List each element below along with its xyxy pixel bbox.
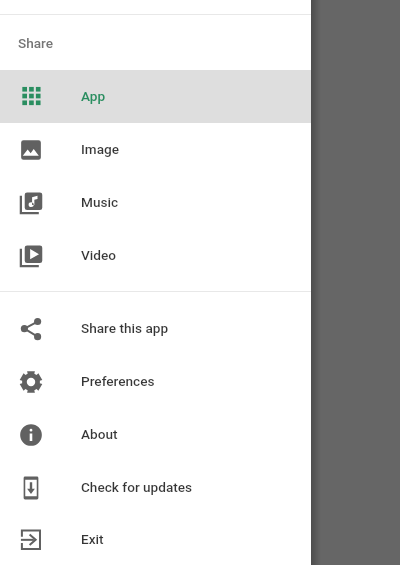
button[interactable]: About: [0, 408, 311, 461]
staticText: Music: [81, 194, 119, 210]
staticText: Video: [81, 247, 116, 263]
staticText: Preferences: [81, 373, 155, 389]
staticText: Exit: [81, 531, 104, 547]
staticText: Image: [81, 141, 120, 157]
staticText: About: [81, 426, 118, 442]
button[interactable]: App: [0, 70, 311, 123]
staticText: Share this app: [81, 320, 169, 336]
button[interactable]: Exit: [0, 514, 311, 565]
button[interactable]: Share this app: [0, 302, 311, 355]
button[interactable]: Video: [0, 229, 311, 282]
button[interactable]: Music: [0, 176, 311, 229]
staticText: Share: [18, 35, 54, 51]
button[interactable]: Check for updates: [0, 461, 311, 514]
staticText: Check for updates: [81, 479, 193, 495]
button[interactable]: Image: [0, 123, 311, 176]
button[interactable]: Preferences: [0, 355, 311, 408]
staticText: App: [81, 88, 106, 104]
